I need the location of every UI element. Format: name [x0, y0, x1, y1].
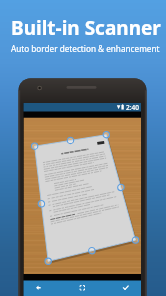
staticText: Auto border detection & enhancement — [11, 43, 160, 54]
staticText: Built-in Scanner — [11, 15, 161, 41]
button[interactable]: Back — [24, 281, 64, 296]
staticText: 2:40 — [126, 103, 139, 112]
button[interactable]: Auto crop — [64, 281, 103, 296]
button[interactable]: Confirm — [103, 281, 142, 296]
